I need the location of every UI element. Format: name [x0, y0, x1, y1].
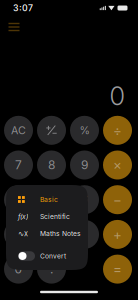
staticText: 7 — [15, 158, 22, 172]
staticText: − — [113, 192, 122, 208]
staticText: 8 — [48, 158, 55, 172]
staticText: . — [50, 262, 53, 276]
staticText: 5 — [48, 192, 55, 207]
staticText: f(x) — [18, 212, 28, 221]
staticText: ÷ — [113, 122, 122, 138]
staticText: × — [113, 157, 122, 173]
staticText: Scientific — [40, 212, 70, 221]
button[interactable]: = — [103, 255, 132, 284]
button[interactable]: Basic — [6, 191, 88, 208]
button[interactable]: 7 — [4, 150, 33, 179]
staticText: Basic — [40, 195, 58, 204]
button[interactable]: 8 — [37, 150, 66, 179]
button[interactable]: 3 — [70, 220, 99, 249]
button[interactable]: ∿x — [6, 225, 88, 242]
staticText: Convert — [40, 252, 66, 260]
button[interactable]: ÷ — [103, 116, 132, 145]
staticText: 4 — [14, 192, 22, 207]
staticText: 0 — [109, 81, 124, 111]
staticText: 1 — [16, 227, 21, 242]
button[interactable]: 6 — [70, 185, 99, 214]
button[interactable]: % — [70, 116, 99, 145]
button[interactable]: + — [103, 220, 132, 249]
staticText: 9 — [81, 158, 88, 172]
button[interactable]: 9 — [70, 150, 99, 179]
staticText: 3:07 — [13, 3, 33, 13]
button[interactable]: Calculator mode — [3, 18, 25, 36]
staticText: % — [79, 124, 89, 137]
button[interactable]: Toggle sign — [37, 116, 66, 145]
button[interactable]: 0 — [4, 255, 33, 284]
button[interactable]: 5 — [37, 185, 66, 214]
button[interactable]: AC — [4, 116, 33, 145]
button[interactable]: Convert — [6, 242, 88, 270]
button[interactable]: 1 — [4, 220, 33, 249]
button[interactable]: f(x) — [6, 208, 88, 225]
staticText: AC — [11, 124, 26, 137]
staticText: + — [113, 226, 122, 242]
staticText: ∿x — [18, 229, 28, 238]
button[interactable]: − — [103, 185, 132, 214]
button[interactable]: 2 — [37, 220, 66, 249]
button[interactable]: . — [37, 255, 66, 284]
staticText: = — [113, 261, 122, 277]
staticText: 0 — [14, 262, 22, 276]
staticText: 2 — [48, 227, 55, 242]
button[interactable]: 4 — [4, 185, 33, 214]
button[interactable]: × — [103, 150, 132, 179]
staticText: Maths Notes — [40, 229, 81, 238]
